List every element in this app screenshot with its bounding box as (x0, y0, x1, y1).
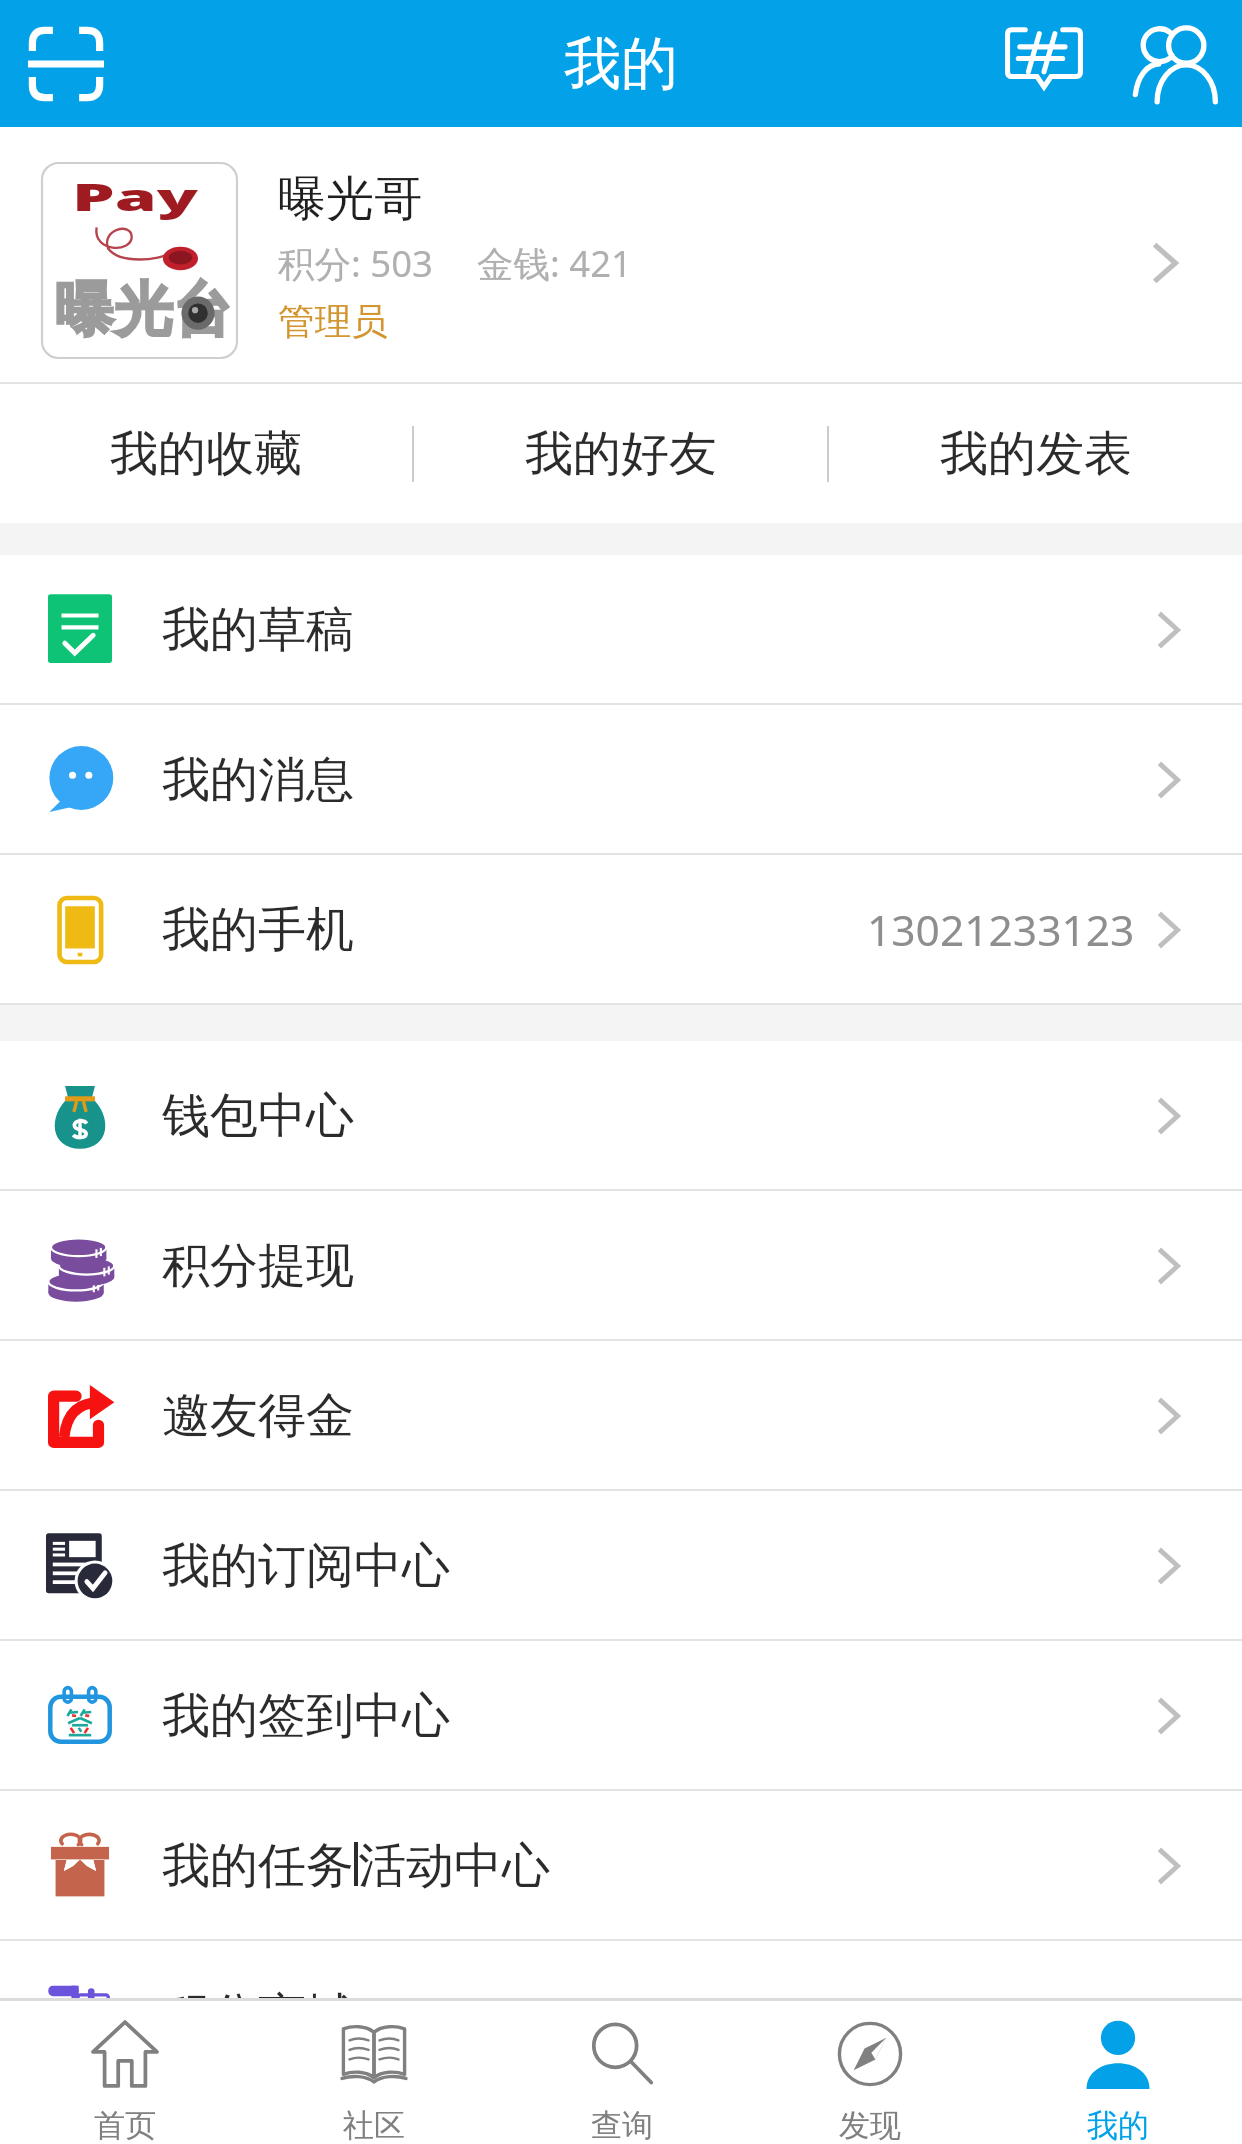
staticText: 我的好友 (525, 424, 717, 484)
button[interactable]: 积分提现 (0, 1191, 1242, 1341)
staticText: 积分商城 (162, 1986, 354, 2046)
staticText: 我的消息 (162, 750, 354, 810)
staticText: 我的收藏 (110, 424, 302, 484)
staticText: 社区 (343, 2106, 405, 2144)
button[interactable]: 我的任务 (0, 1791, 1242, 1941)
button[interactable]: 钱包中心 (0, 1041, 1242, 1191)
button[interactable]: 我的 (994, 2001, 1242, 2144)
staticText: 我的草稿 (162, 600, 354, 660)
staticText: 查询 (591, 2106, 653, 2144)
staticText: 13021233123 (867, 901, 1135, 959)
staticText: 管理员 (278, 299, 388, 345)
button[interactable]: 我的发表 (829, 384, 1242, 523)
staticText: 曝光台 (55, 273, 232, 347)
button[interactable]: 我的草稿 (0, 555, 1242, 705)
button[interactable]: Scan (14, 12, 118, 116)
button[interactable]: 首页 (0, 2001, 249, 2144)
button[interactable]: Friends (1124, 12, 1228, 116)
staticText: 首页 (94, 2106, 156, 2144)
button[interactable]: Pay (0, 127, 1242, 384)
button[interactable]: 邀友得金 (0, 1341, 1242, 1491)
staticText: 我的订阅中心 (162, 1536, 450, 1596)
staticText: 我的发表 (940, 424, 1132, 484)
staticText: 金钱: 421 (477, 238, 632, 288)
button[interactable]: 发现 (746, 2001, 994, 2144)
staticText: 钱包中心 (162, 1086, 354, 1146)
button[interactable]: 积分商城 (0, 1941, 1242, 2091)
staticText: 活动中心 (358, 1836, 550, 1896)
staticText: 我的 (564, 28, 678, 100)
button[interactable]: 我的好友 (414, 384, 827, 523)
staticText: 发现 (839, 2106, 901, 2144)
button[interactable]: 查询 (498, 2001, 746, 2144)
staticText: 积分: 503 (278, 238, 433, 288)
staticText: 曝光哥 (278, 169, 422, 229)
button[interactable]: 我的手机 (0, 855, 1242, 1005)
staticText: 我的 (1087, 2106, 1149, 2144)
staticText: 我的任务 (162, 1836, 354, 1896)
button[interactable]: Topics (992, 12, 1096, 116)
staticText: 邀友得金 (162, 1386, 354, 1446)
button[interactable]: 我的订阅中心 (0, 1491, 1242, 1641)
button[interactable]: 我的消息 (0, 705, 1242, 855)
button[interactable]: 社区 (249, 2001, 498, 2144)
staticText: 我的手机 (162, 900, 354, 960)
button[interactable]: 我的收藏 (0, 384, 412, 523)
staticText: 我的签到中心 (162, 1686, 450, 1746)
button[interactable]: 我的签到中心 (0, 1641, 1242, 1791)
staticText: Pay (72, 171, 198, 221)
staticText: 积分提现 (162, 1236, 354, 1296)
